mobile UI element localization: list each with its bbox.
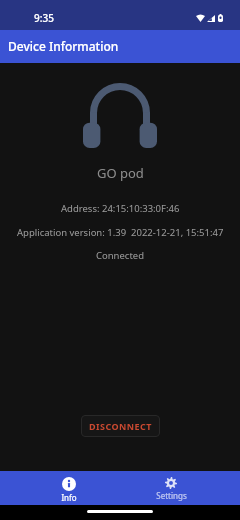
button[interactable]: Settings [120, 471, 222, 505]
staticText: 9:35 [34, 11, 54, 25]
staticText: Address: 24:15:10:33:0F:46 [61, 202, 180, 215]
button[interactable]: DISCONNECT [81, 415, 160, 437]
staticText: DISCONNECT [89, 420, 152, 432]
other: Info [62, 477, 76, 491]
staticText: Device Information [8, 38, 119, 54]
staticText: GO pod [97, 164, 144, 182]
staticText: Info [61, 492, 77, 503]
other: Settings [165, 477, 177, 489]
staticText: Application version: 1.39 2022-12-21, 15… [17, 226, 224, 239]
button[interactable]: Info [18, 471, 120, 505]
staticText: Connected [96, 249, 145, 262]
staticText: Settings [156, 490, 187, 501]
